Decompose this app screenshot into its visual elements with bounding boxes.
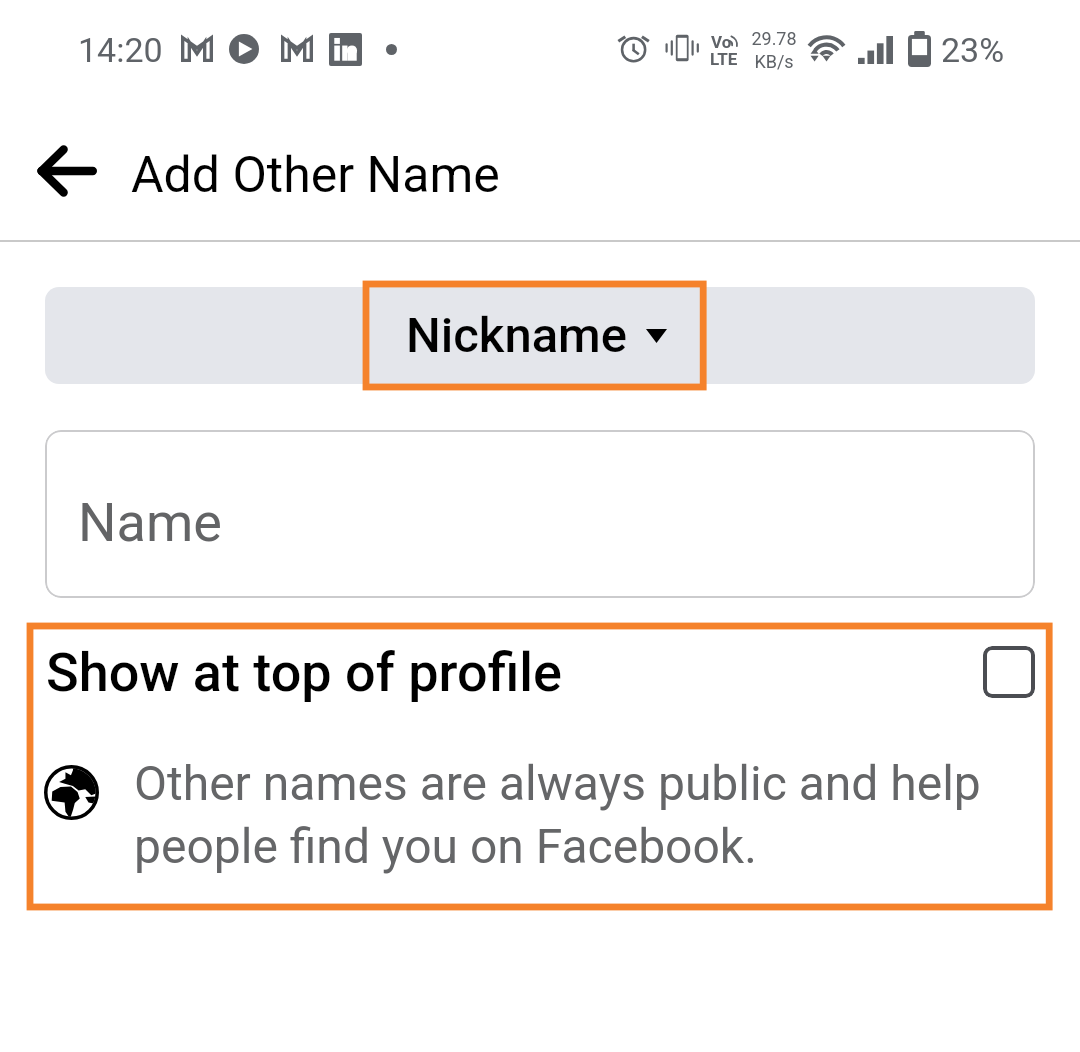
button[interactable]: Show at top of profile [46,632,1035,712]
staticText: KB/s [754,51,794,72]
button[interactable]: Name [45,430,1035,598]
staticText: LTE [710,49,738,69]
staticText: 29.78 [751,28,797,49]
staticText: 23% [941,30,1005,70]
button[interactable]: Nickname [45,287,1035,384]
button[interactable]: Show at top of profile checkbox [983,646,1035,698]
staticText: Show at top of profile [46,641,983,704]
staticText: Add Other Name [131,146,500,205]
staticText: 14:20 [78,30,163,70]
button[interactable]: Back [17,121,117,221]
staticText: Nickname [406,307,628,364]
staticText: Other names are always public and help p… [134,755,994,875]
staticText: Name [78,491,222,554]
staticText: Vo [711,32,732,52]
